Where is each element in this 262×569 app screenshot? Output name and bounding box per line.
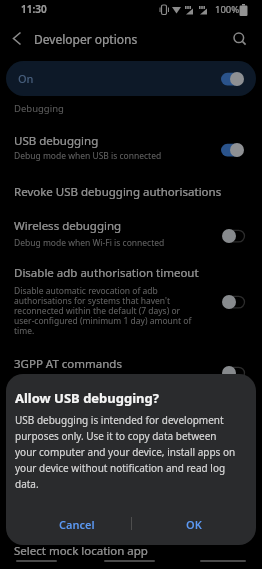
staticText: Select mock location app bbox=[14, 543, 148, 559]
button[interactable] bbox=[220, 294, 246, 310]
button[interactable] bbox=[220, 142, 246, 158]
button[interactable] bbox=[220, 228, 246, 244]
staticText: USB debugging bbox=[14, 133, 99, 149]
button[interactable] bbox=[220, 71, 246, 87]
button[interactable] bbox=[0, 175, 262, 211]
staticText: 11:30 bbox=[21, 2, 47, 16]
button[interactable] bbox=[200, 560, 246, 562]
staticText: USB debugging is intended for developmen… bbox=[15, 413, 236, 490]
staticText: On bbox=[18, 71, 34, 86]
staticText: Allow USB debugging? bbox=[15, 389, 159, 407]
button[interactable]: Cancel bbox=[22, 505, 131, 543]
button[interactable]: On bbox=[6, 61, 256, 96]
button[interactable]: OK bbox=[132, 505, 256, 543]
staticText: 3GPP AT commands bbox=[14, 356, 122, 372]
button[interactable] bbox=[0, 258, 262, 340]
button[interactable] bbox=[11, 32, 23, 46]
staticText: Debug mode when USB is connected bbox=[14, 150, 162, 162]
staticText: OK bbox=[186, 517, 202, 532]
button[interactable] bbox=[220, 365, 246, 381]
staticText: Disable automatic revocation of adb auth… bbox=[14, 285, 192, 336]
button[interactable] bbox=[104, 560, 155, 562]
staticText: Wireless debugging bbox=[14, 218, 122, 234]
staticText: Debugging bbox=[14, 102, 64, 115]
staticText: Disable adb authorisation timeout bbox=[14, 265, 199, 281]
staticText: Cancel bbox=[59, 517, 95, 532]
staticText: Debug mode when Wi-Fi is connected bbox=[14, 237, 165, 249]
button[interactable] bbox=[16, 560, 57, 562]
button[interactable] bbox=[0, 348, 262, 388]
button[interactable] bbox=[0, 126, 262, 170]
button[interactable] bbox=[232, 31, 248, 47]
button[interactable] bbox=[0, 212, 262, 256]
staticText: Developer options bbox=[34, 31, 138, 47]
staticText: Revoke USB debugging authorisations bbox=[14, 184, 222, 200]
staticText: 100% bbox=[215, 3, 240, 16]
